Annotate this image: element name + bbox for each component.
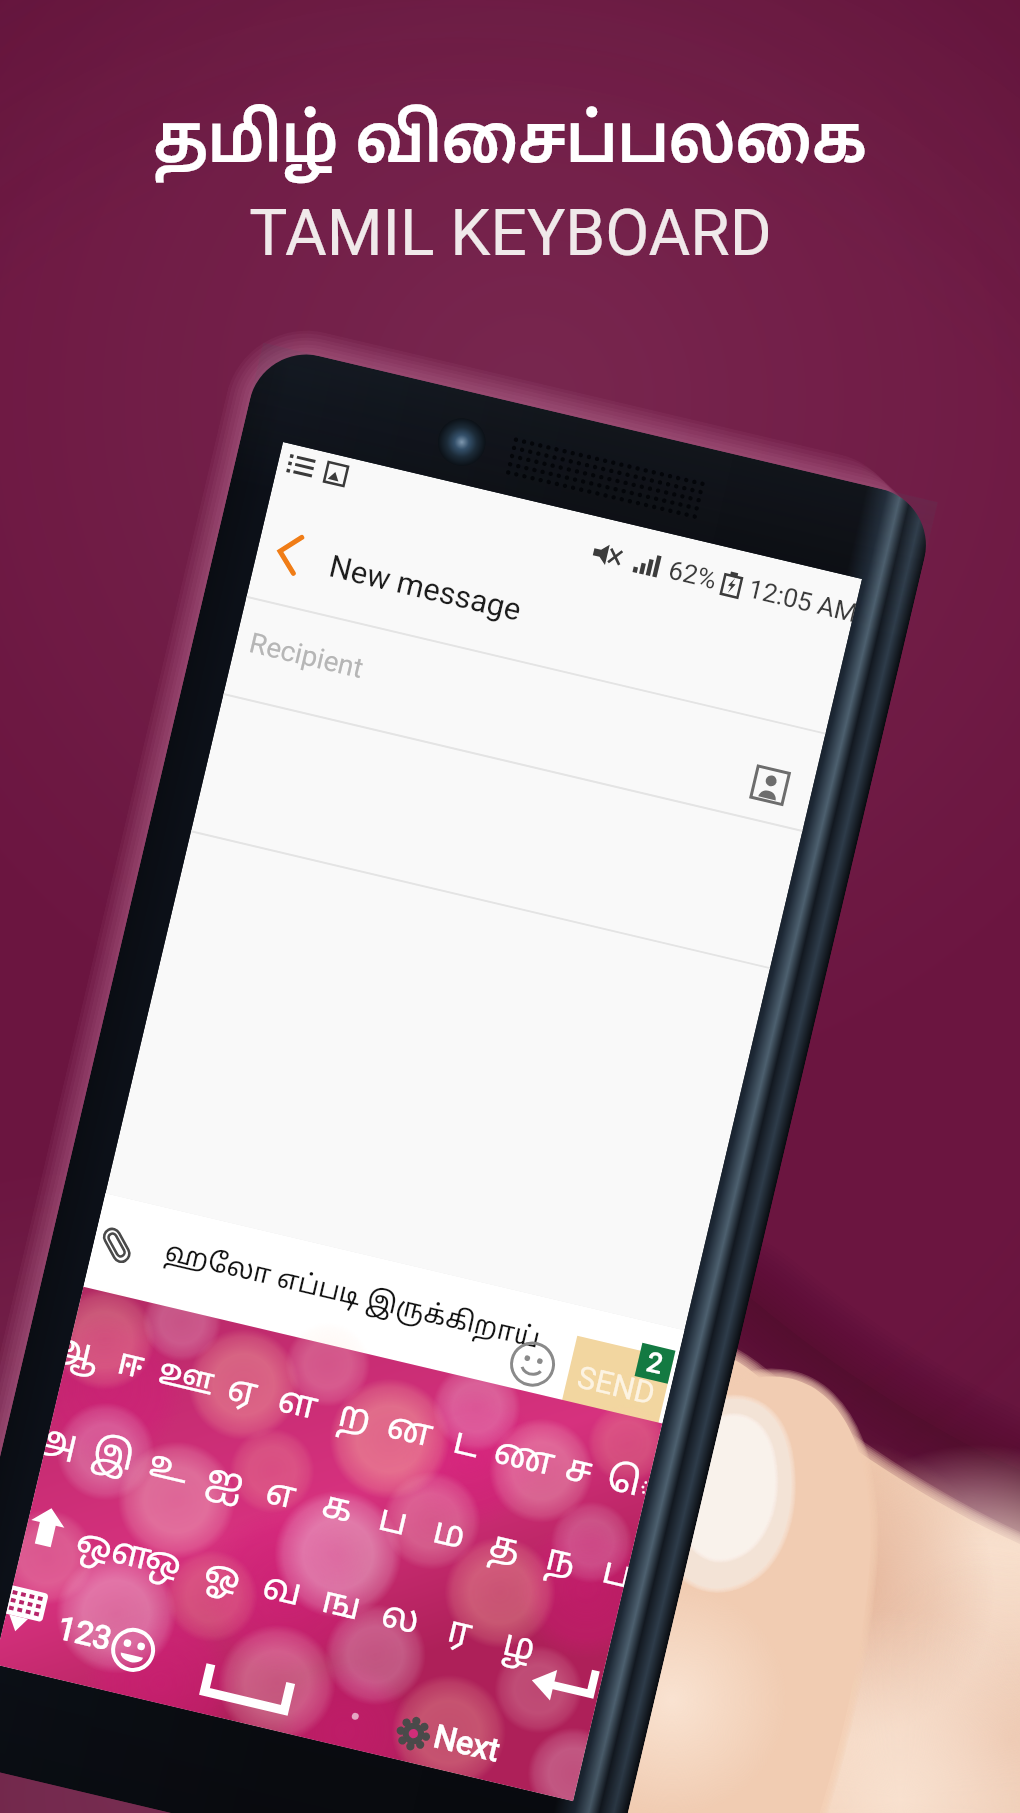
staticText: 12:05 AM bbox=[745, 573, 857, 627]
button[interactable]: ெ bbox=[599, 1450, 654, 1518]
staticText: ங bbox=[317, 1580, 365, 1633]
button[interactable]: ஈ bbox=[96, 1331, 164, 1402]
staticText: 62% bbox=[666, 555, 720, 595]
button[interactable]: வ bbox=[247, 1557, 315, 1628]
staticText: ஆ bbox=[63, 1329, 103, 1381]
button[interactable]: Emoji bbox=[505, 1336, 560, 1392]
button[interactable]: SEND bbox=[560, 1336, 674, 1433]
staticText: ஓ bbox=[199, 1552, 246, 1605]
button[interactable]: த bbox=[470, 1514, 538, 1585]
button[interactable]: ல bbox=[366, 1585, 434, 1656]
button[interactable]: அ bbox=[40, 1412, 91, 1479]
button[interactable]: Back bbox=[273, 531, 304, 575]
staticText: ஒ bbox=[140, 1538, 186, 1591]
staticText: தமிழ் விசைப்பலகை bbox=[153, 104, 867, 186]
button[interactable]: 123 bbox=[54, 1609, 115, 1658]
staticText: ஏ bbox=[222, 1367, 262, 1419]
staticText: ர bbox=[442, 1609, 476, 1660]
staticText: ஔ bbox=[71, 1521, 136, 1579]
staticText: ச bbox=[560, 1447, 597, 1498]
button[interactable]: ஔ bbox=[69, 1515, 137, 1586]
button[interactable]: க bbox=[303, 1474, 371, 1546]
button[interactable]: ர bbox=[425, 1599, 493, 1670]
button[interactable]: Next bbox=[430, 1717, 504, 1769]
button[interactable]: ன bbox=[375, 1397, 444, 1468]
button[interactable]: Enter bbox=[527, 1654, 598, 1713]
staticText: ஹலோ எப்படி இருக்கிறாய் bbox=[161, 1237, 544, 1358]
button[interactable]: Emoji bbox=[107, 1623, 159, 1676]
button[interactable]: ந bbox=[526, 1527, 595, 1599]
staticText: ற bbox=[333, 1393, 376, 1446]
staticText: எ bbox=[260, 1471, 300, 1522]
staticText: ஈ bbox=[112, 1341, 149, 1392]
button[interactable]: Shift bbox=[26, 1504, 68, 1549]
staticText: ஊ bbox=[153, 1351, 218, 1408]
button[interactable]: ள bbox=[263, 1371, 332, 1442]
button[interactable]: ப bbox=[582, 1540, 633, 1607]
button[interactable]: இ bbox=[79, 1421, 147, 1493]
button[interactable]: எ bbox=[246, 1461, 314, 1532]
button[interactable]: உ bbox=[134, 1435, 202, 1506]
button[interactable]: ச bbox=[544, 1437, 612, 1508]
button[interactable]: ஏ bbox=[208, 1357, 276, 1429]
button[interactable]: ங bbox=[306, 1571, 375, 1642]
button[interactable]: Attach bbox=[93, 1221, 141, 1269]
staticText: New message bbox=[326, 548, 525, 628]
staticText: இ bbox=[87, 1430, 139, 1484]
button[interactable]: Space bbox=[204, 1664, 291, 1710]
button[interactable]: ஐ bbox=[191, 1448, 259, 1519]
staticText: ப bbox=[373, 1497, 412, 1549]
button[interactable]: ற bbox=[320, 1384, 388, 1455]
staticText: ள bbox=[273, 1379, 322, 1433]
staticText: TAMIL KEYBOARD bbox=[249, 196, 772, 271]
staticText: 2 bbox=[644, 1346, 666, 1381]
staticText: ன bbox=[382, 1405, 437, 1460]
button[interactable]: ட bbox=[432, 1410, 500, 1482]
staticText: வ bbox=[257, 1566, 306, 1619]
staticText: SEND bbox=[574, 1358, 659, 1412]
button[interactable]: ஒ bbox=[128, 1529, 197, 1600]
staticText: அ bbox=[41, 1419, 82, 1471]
button[interactable]: ப bbox=[358, 1487, 426, 1559]
staticText: ப bbox=[597, 1550, 631, 1601]
staticText: த bbox=[484, 1524, 525, 1576]
button[interactable]: Settings bbox=[392, 1712, 435, 1755]
staticText: Recipient bbox=[246, 626, 367, 685]
button[interactable]: Choose contact bbox=[751, 766, 789, 804]
staticText: ட bbox=[448, 1421, 484, 1471]
staticText: ல bbox=[376, 1594, 424, 1647]
button[interactable]: ஆ bbox=[61, 1323, 108, 1389]
staticText: க bbox=[317, 1484, 358, 1536]
staticText: ெ bbox=[602, 1457, 652, 1511]
staticText: ந bbox=[541, 1537, 580, 1589]
staticText: ஐ bbox=[201, 1457, 249, 1510]
staticText: ண bbox=[489, 1430, 554, 1488]
button[interactable]: ஊ bbox=[151, 1344, 220, 1415]
button[interactable]: Switch keyboard bbox=[3, 1585, 49, 1637]
staticText: ழ bbox=[498, 1622, 540, 1675]
button[interactable]: ழ bbox=[485, 1613, 553, 1684]
staticText: ம bbox=[428, 1510, 469, 1562]
button[interactable]: ஓ bbox=[188, 1543, 256, 1614]
staticText: உ bbox=[144, 1443, 193, 1497]
button[interactable]: ண bbox=[487, 1423, 556, 1495]
button[interactable]: ம bbox=[414, 1501, 483, 1572]
